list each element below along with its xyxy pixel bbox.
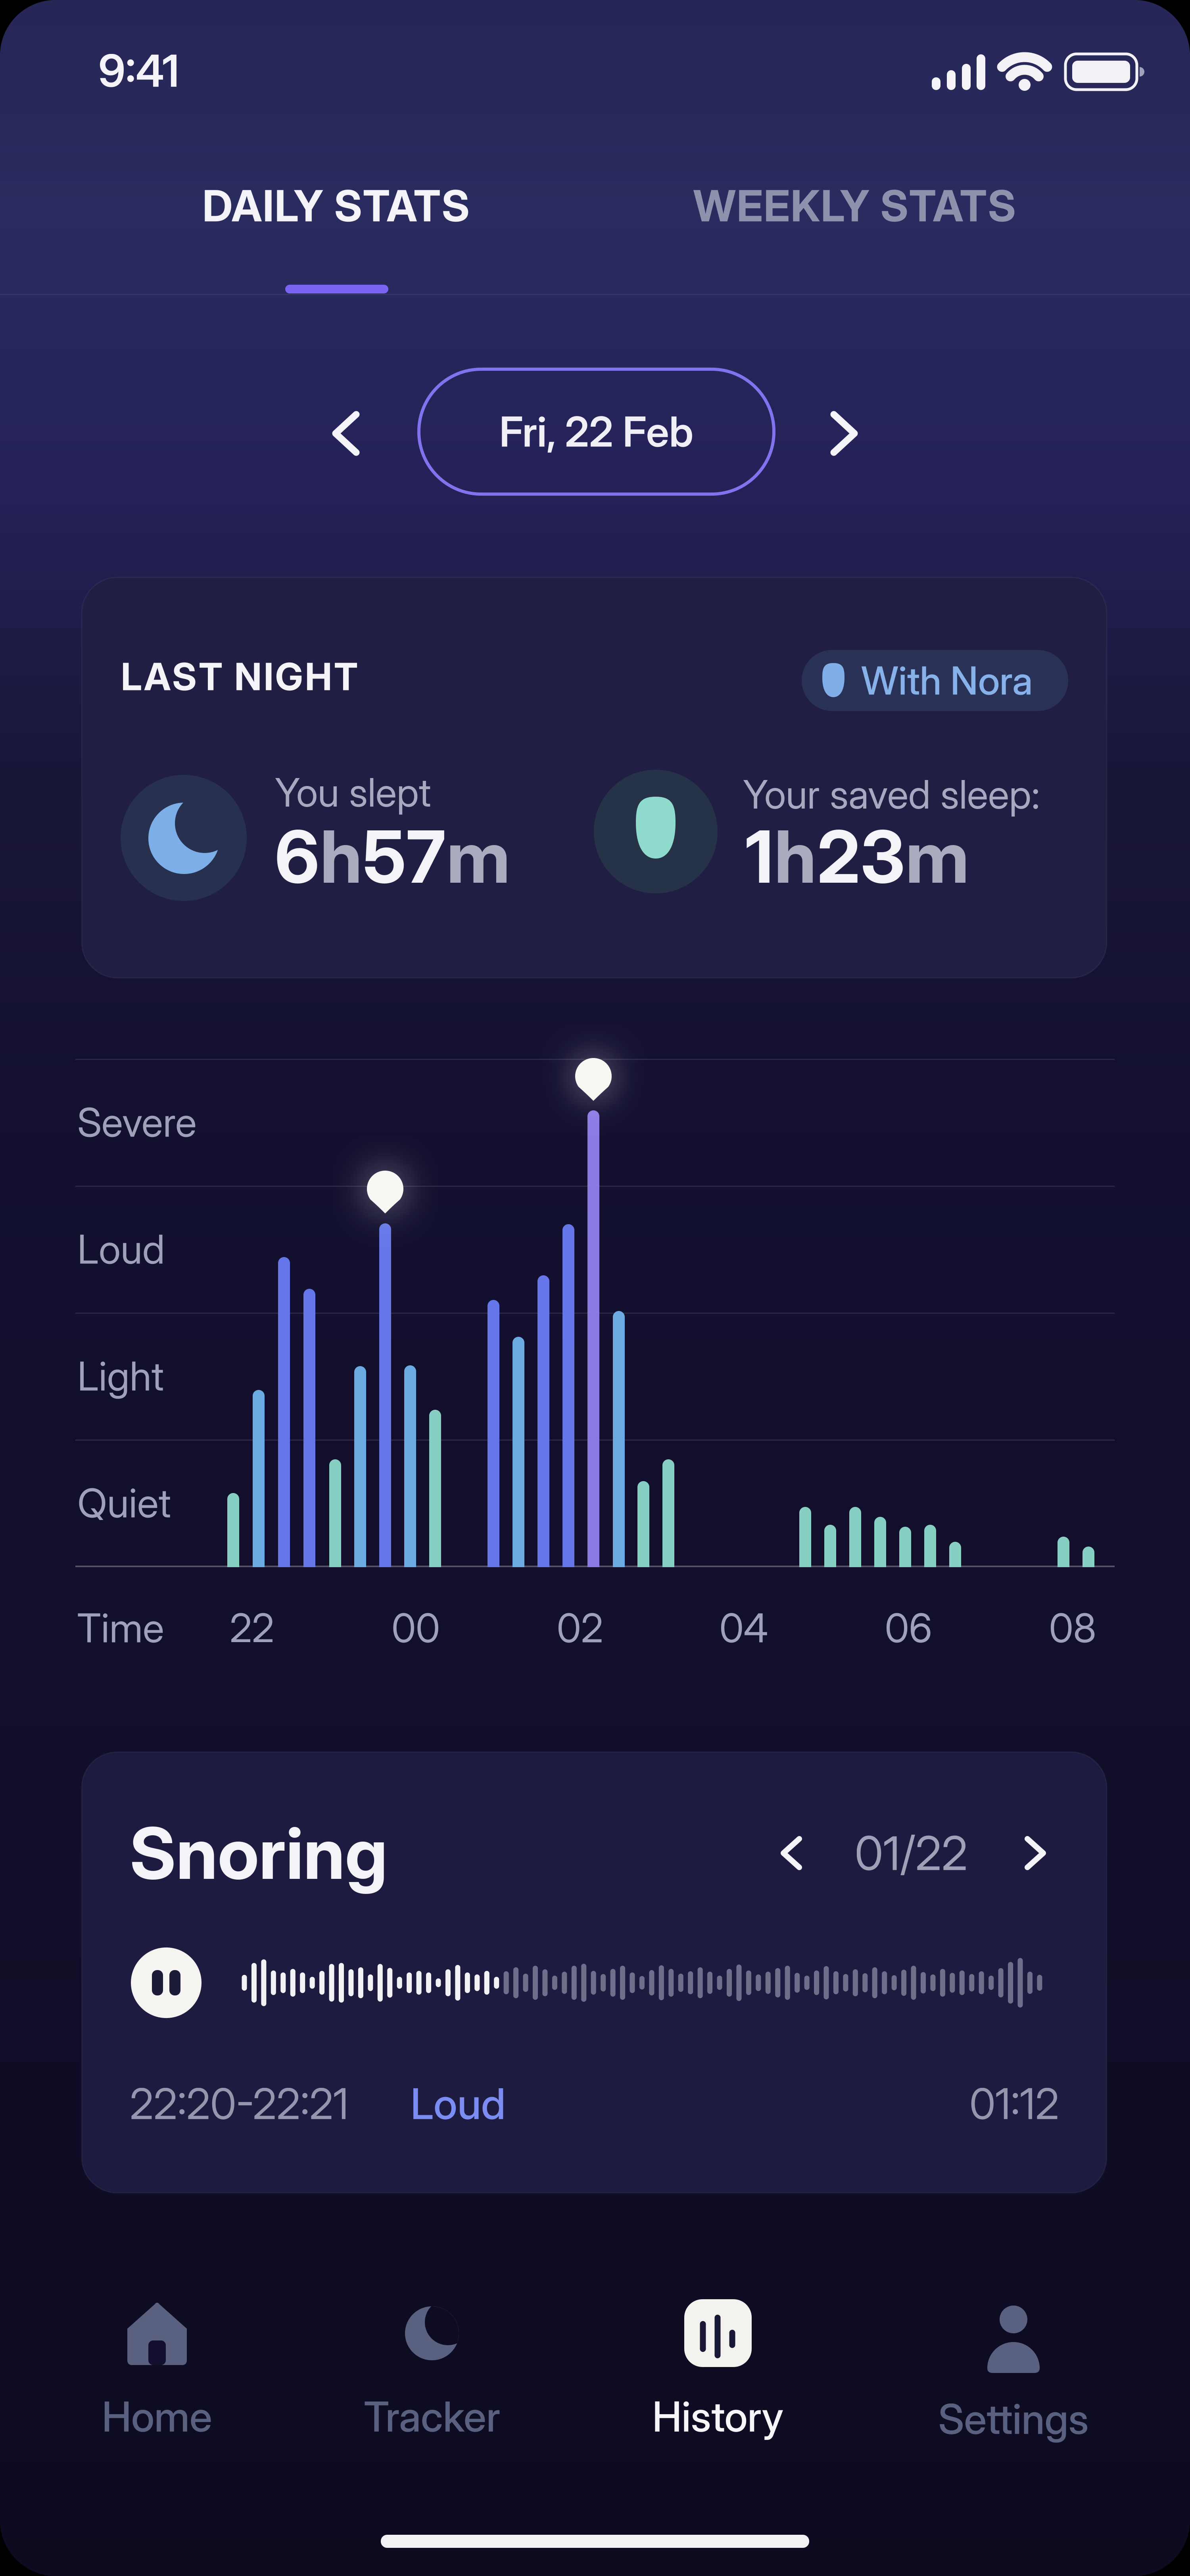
- staticText: Your saved sleep:: [743, 771, 1040, 817]
- staticText: WEEKLY STATS: [693, 181, 1016, 231]
- button[interactable]: Fri, 22 Feb: [419, 369, 774, 494]
- staticText: 23: [817, 814, 905, 899]
- staticText: 22:20-22:21: [130, 2079, 349, 2129]
- staticText: With Nora: [861, 658, 1033, 703]
- button[interactable]: Pause: [131, 1947, 202, 2018]
- staticText: 04: [719, 1604, 768, 1651]
- staticText: 00: [392, 1604, 440, 1651]
- staticText: h: [774, 814, 816, 899]
- staticText: 08: [1049, 1604, 1096, 1651]
- button[interactable]: Home: [30, 2302, 284, 2445]
- button[interactable]: Next recording: [1011, 1821, 1059, 1885]
- staticText: Loud: [411, 2079, 505, 2129]
- staticText: Time: [77, 1604, 164, 1651]
- staticText: You slept: [275, 769, 431, 815]
- staticText: 57: [363, 814, 446, 899]
- button[interactable]: Previous recording: [768, 1821, 815, 1885]
- button[interactable]: Settings: [887, 2305, 1140, 2448]
- staticText: h: [320, 814, 362, 899]
- staticText: 01:12: [969, 2079, 1059, 2129]
- button[interactable]: DAILY STATS: [157, 176, 514, 236]
- staticText: DAILY STATS: [202, 181, 469, 231]
- staticText: Settings: [938, 2395, 1089, 2443]
- button[interactable]: WEEKLY STATS: [656, 176, 1053, 236]
- staticText: m: [906, 814, 969, 899]
- button[interactable]: Previous day: [318, 394, 374, 473]
- button[interactable]: With Nora: [802, 650, 1068, 711]
- button[interactable]: Tracker: [305, 2302, 559, 2445]
- button[interactable]: History: [591, 2302, 845, 2445]
- staticText: Tracker: [364, 2392, 500, 2441]
- staticText: m: [447, 814, 510, 899]
- staticText: Light: [77, 1353, 164, 1399]
- staticText: 06: [885, 1604, 932, 1651]
- staticText: Loud: [77, 1226, 165, 1273]
- staticText: Fri, 22 Feb: [499, 407, 693, 456]
- staticText: History: [652, 2392, 784, 2441]
- staticText: Quiet: [77, 1480, 171, 1526]
- staticText: Snoring: [130, 1811, 388, 1895]
- staticText: 9:41: [98, 44, 179, 97]
- staticText: LAST NIGHT: [121, 654, 358, 699]
- staticText: 22: [230, 1604, 274, 1651]
- staticText: 01/22: [855, 1826, 968, 1881]
- staticText: 02: [557, 1604, 603, 1651]
- staticText: Severe: [77, 1099, 197, 1146]
- button[interactable]: Next day: [816, 394, 872, 473]
- staticText: 6: [275, 814, 319, 899]
- staticText: Home: [102, 2392, 212, 2441]
- staticText: 1: [745, 814, 773, 899]
